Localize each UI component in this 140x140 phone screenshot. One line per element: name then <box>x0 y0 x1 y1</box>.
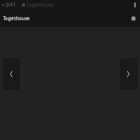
button[interactable]: Next image <box>120 58 137 90</box>
staticText: togethouse <box>27 2 54 8</box>
button[interactable]: Menu <box>129 14 138 23</box>
staticText: Togethouse <box>3 15 30 21</box>
button[interactable]: Previous image <box>3 58 20 90</box>
staticText: 9:41 <box>6 2 16 8</box>
